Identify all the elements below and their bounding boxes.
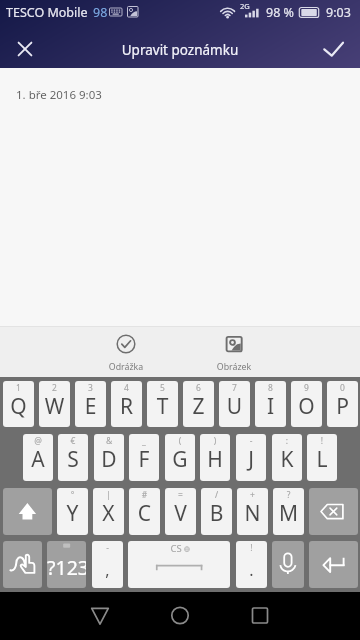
staticText: M — [273, 499, 304, 528]
button[interactable]: 8 — [255, 381, 286, 427]
staticText: Odrážka — [90, 361, 162, 373]
button[interactable]: Home — [156, 592, 204, 640]
staticText: 98 % — [266, 4, 294, 21]
staticText: Upravit poznámku — [0, 41, 360, 59]
button[interactable]: Voice input — [272, 541, 304, 588]
button[interactable]: Backspace — [309, 488, 358, 535]
button[interactable]: ! — [307, 434, 337, 481]
staticText: - — [236, 435, 266, 447]
button[interactable]: 6 — [183, 381, 214, 427]
staticText: : — [272, 435, 302, 447]
button[interactable]: - — [92, 541, 123, 588]
button[interactable]: 2 — [39, 381, 70, 427]
button[interactable]: = — [165, 488, 196, 535]
button[interactable]: 0 — [327, 381, 358, 427]
staticText: 1. bře 2016 9:03 — [16, 87, 102, 103]
staticText: Y — [57, 499, 88, 528]
button[interactable]: + — [237, 488, 268, 535]
staticText: 2G — [240, 1, 250, 11]
button[interactable]: # — [129, 488, 160, 535]
button[interactable]: ?123 — [47, 541, 86, 588]
staticText: 9 — [291, 382, 322, 394]
staticText: @ — [23, 435, 53, 447]
staticText: ?123 — [47, 554, 86, 581]
staticText: O — [291, 392, 322, 421]
staticText: Z — [183, 392, 214, 421]
staticText: D — [94, 445, 124, 474]
button[interactable]: Close — [4, 28, 46, 70]
button[interactable]: € — [58, 434, 88, 481]
button[interactable]: ) — [200, 434, 230, 481]
staticText: 3 — [75, 382, 106, 394]
staticText: E — [75, 392, 106, 421]
staticText: TESCO Mobile — [6, 4, 88, 21]
button[interactable]: ? — [273, 488, 304, 535]
staticText: ( — [165, 435, 195, 447]
staticText: & — [94, 435, 124, 447]
button[interactable]: Shift — [3, 488, 52, 535]
staticText: X — [93, 499, 124, 528]
staticText: C — [129, 499, 160, 528]
button[interactable]: Bullet list — [90, 327, 162, 377]
staticText: . — [236, 559, 267, 581]
button[interactable]: 4 — [111, 381, 142, 427]
staticText: J — [236, 445, 266, 474]
staticText: ) — [200, 435, 230, 447]
staticText: = — [165, 489, 196, 501]
button[interactable]: 9 — [291, 381, 322, 427]
button[interactable]: ( — [165, 434, 195, 481]
button[interactable]: & — [94, 434, 124, 481]
staticText: + — [237, 489, 268, 501]
button[interactable]: 3 — [75, 381, 106, 427]
staticText: U — [219, 392, 250, 421]
button[interactable]: @ — [23, 434, 53, 481]
button[interactable]: Recent apps — [236, 592, 284, 640]
staticText: ! — [236, 542, 267, 554]
staticText: A — [23, 445, 53, 474]
button[interactable]: Save note — [313, 28, 355, 70]
button[interactable]: 1 — [3, 381, 34, 427]
button[interactable]: 5 — [147, 381, 178, 427]
staticText: N — [237, 499, 268, 528]
staticText: W — [39, 392, 70, 421]
staticText: 8 — [255, 382, 286, 394]
button[interactable]: ° — [57, 488, 88, 535]
button[interactable]: / — [201, 488, 232, 535]
staticText: , — [92, 559, 123, 581]
staticText: - — [92, 542, 123, 554]
staticText: / — [201, 489, 232, 501]
staticText: V — [165, 499, 196, 528]
staticText: L — [307, 445, 337, 474]
staticText: # — [129, 489, 160, 501]
staticText: R — [111, 392, 142, 421]
button[interactable]: : — [272, 434, 302, 481]
staticText: ° — [57, 489, 88, 501]
button[interactable]: Enter — [309, 541, 358, 588]
button[interactable]: - — [236, 434, 266, 481]
button[interactable]: Back — [76, 592, 124, 640]
staticText: G — [165, 445, 195, 474]
button[interactable]: Space — [128, 541, 230, 588]
button[interactable]: ! — [236, 541, 267, 588]
button[interactable]: | — [93, 488, 124, 535]
staticText: H — [200, 445, 230, 474]
staticText: _ — [129, 435, 159, 447]
staticText: 0 — [327, 382, 358, 394]
button[interactable]: 7 — [219, 381, 250, 427]
staticText: ? — [273, 489, 304, 501]
staticText: K — [272, 445, 302, 474]
staticText: ! — [307, 435, 337, 447]
staticText: S — [58, 445, 88, 474]
staticText: 2 — [39, 382, 70, 394]
button[interactable]: Insert image — [198, 327, 270, 377]
staticText: | — [93, 489, 124, 501]
button[interactable]: _ — [129, 434, 159, 481]
staticText: CS — [128, 542, 227, 555]
staticText: 1 — [3, 382, 34, 394]
staticText: 6 — [183, 382, 214, 394]
button[interactable]: Handwriting input — [3, 541, 42, 588]
staticText: T — [147, 392, 178, 421]
staticText: B — [201, 499, 232, 528]
staticText: 98 — [93, 4, 108, 21]
staticText: € — [58, 435, 88, 447]
